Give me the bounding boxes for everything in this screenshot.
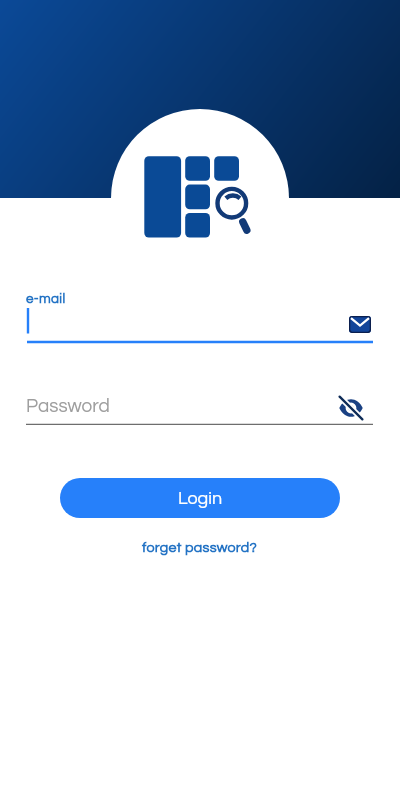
button[interactable]: Login (60, 478, 340, 518)
button[interactable]: Email (349, 316, 371, 333)
staticText: forget password? (142, 540, 258, 555)
button[interactable]: Email (0, 306, 400, 346)
staticText: Password (26, 396, 110, 416)
staticText: e-mail (26, 292, 66, 306)
button[interactable]: Password (0, 390, 400, 430)
button[interactable]: Show password (338, 395, 364, 421)
button[interactable]: forget password? (142, 540, 258, 555)
staticText: Login (178, 489, 223, 508)
